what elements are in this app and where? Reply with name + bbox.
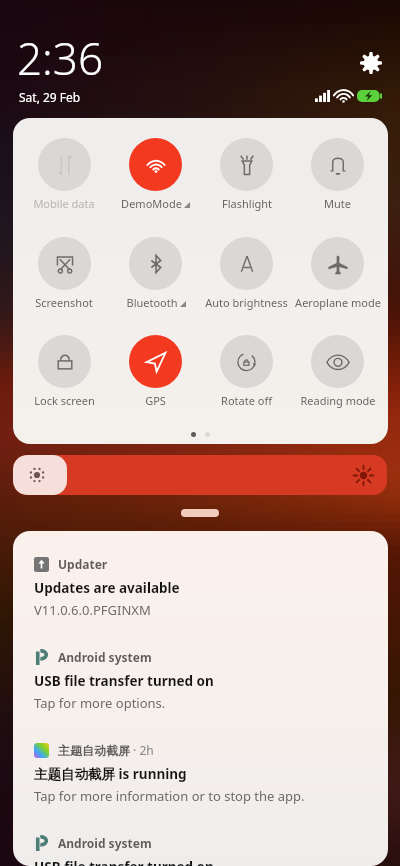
button[interactable]: Screenshot — [18, 237, 110, 310]
staticText: Tap for more options. — [34, 694, 166, 712]
staticText: Mute — [324, 196, 351, 211]
button[interactable]: Android system — [13, 810, 388, 866]
button[interactable]: Mobile data — [18, 138, 110, 211]
staticText: Flashlight — [222, 196, 272, 211]
staticText: USB file transfer turned on — [34, 858, 214, 866]
staticText: 2:36 — [17, 28, 104, 88]
staticText: Android system — [58, 649, 152, 665]
staticText: Screenshot — [35, 295, 93, 310]
staticText: Auto brightness — [205, 295, 288, 310]
staticText: Aeroplane mode — [295, 295, 381, 310]
staticText: DemoMode — [121, 196, 182, 211]
staticText: 主题自动截屏 — [58, 743, 130, 758]
staticText: Tap for more information or to stop the … — [34, 787, 305, 805]
button[interactable]: Lock screen — [18, 335, 110, 408]
staticText: Mobile data — [33, 196, 95, 211]
staticText: GPS — [145, 393, 166, 408]
staticText: USB file transfer turned on — [34, 672, 214, 690]
button[interactable]: Rotate off — [201, 335, 292, 408]
staticText: Updates are available — [34, 579, 180, 597]
staticText: Reading mode — [300, 393, 376, 408]
button[interactable]: Updater — [13, 531, 388, 624]
staticText: Updater — [58, 556, 108, 572]
button[interactable]: DemoMode — [110, 138, 201, 211]
button[interactable]: Auto brightness — [201, 237, 292, 310]
button[interactable] — [13, 455, 387, 495]
staticText: V11.0.6.0.PFGINXM — [34, 601, 151, 619]
staticText: · 2h — [130, 742, 154, 758]
button[interactable]: Flashlight — [201, 138, 292, 211]
button[interactable]: 主题自动截屏 — [13, 717, 388, 810]
button[interactable]: GPS — [110, 335, 201, 408]
button[interactable]: Reading mode — [292, 335, 383, 408]
button[interactable]: Mute — [292, 138, 383, 211]
button[interactable]: Android system — [13, 624, 388, 717]
staticText: Android system — [58, 835, 152, 851]
staticText: Sat, 29 Feb — [19, 89, 81, 105]
button[interactable]: Aeroplane mode — [292, 237, 383, 310]
button[interactable]: Settings — [357, 49, 385, 77]
staticText: Bluetooth — [126, 295, 178, 310]
staticText: Lock screen — [34, 393, 95, 408]
staticText: Rotate off — [221, 393, 272, 408]
staticText: 主题自动截屏 is running — [34, 765, 187, 783]
button[interactable]: Bluetooth — [110, 237, 201, 310]
